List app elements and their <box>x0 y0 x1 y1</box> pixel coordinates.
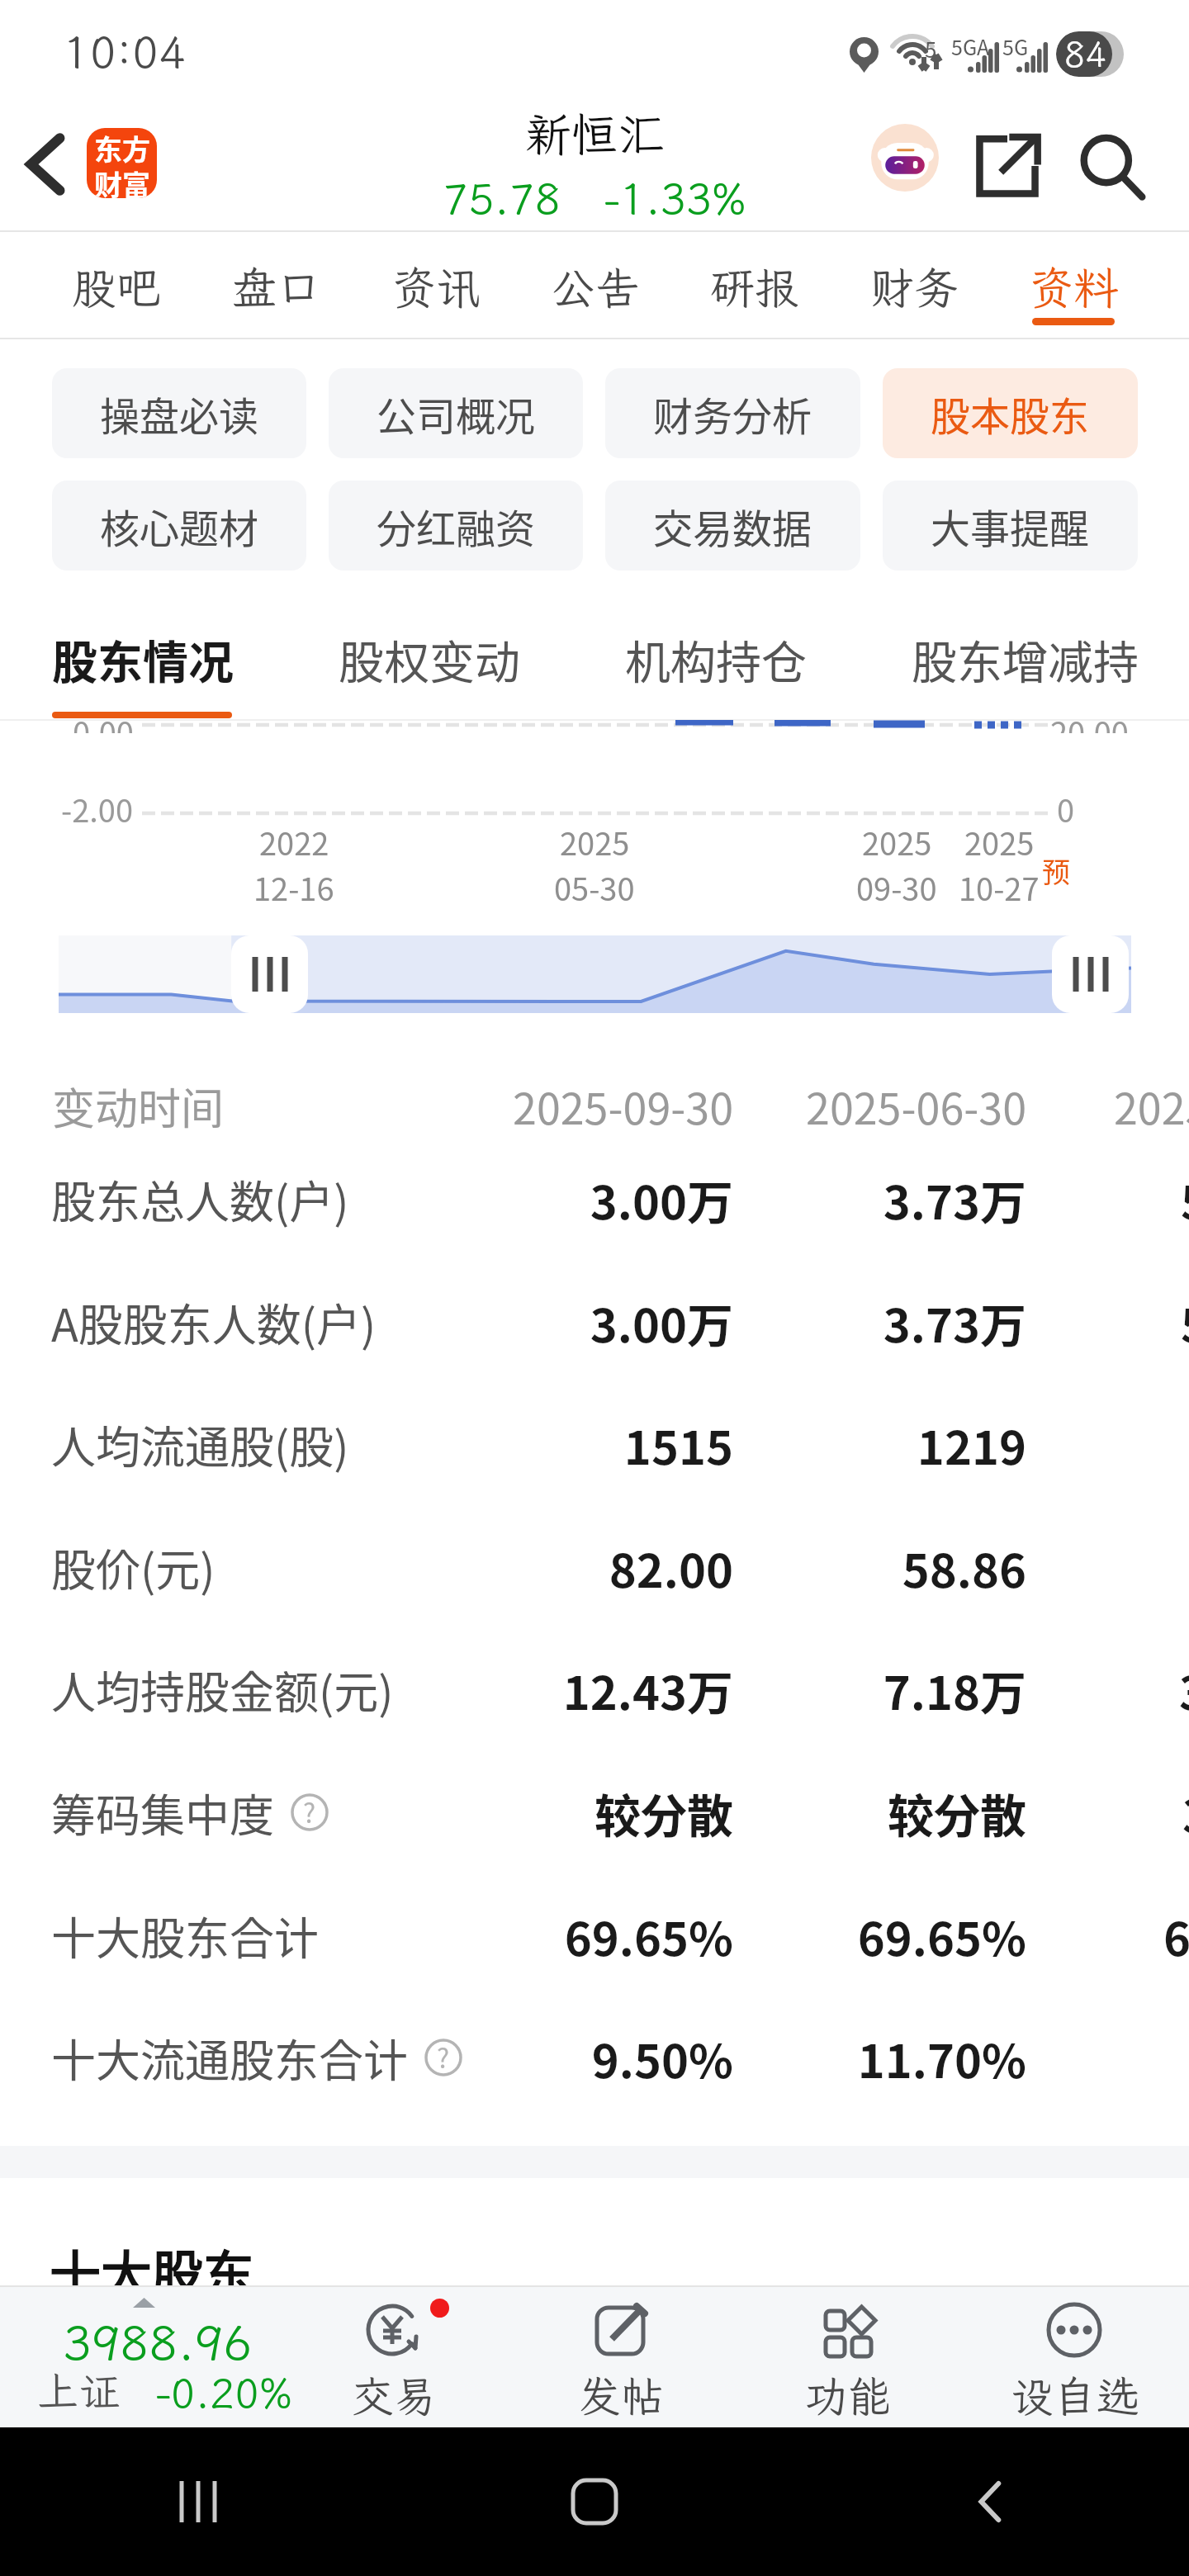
staticText: 5G <box>1002 31 1029 61</box>
staticText: 12-16 <box>253 864 334 910</box>
staticText: 09-30 <box>856 864 937 910</box>
button[interactable]: 股吧 <box>36 232 197 338</box>
button[interactable]: 公告 <box>515 232 675 338</box>
staticText: 10-27 <box>959 864 1040 910</box>
staticText: 11.70% <box>613 2024 1026 2091</box>
button[interactable]: East Money home <box>87 128 157 198</box>
button[interactable]: 设自选 <box>962 2287 1189 2408</box>
staticText: 新恒汇 <box>525 103 664 164</box>
staticText: 股东情况 <box>52 626 234 692</box>
staticText: 核心题材 <box>100 497 259 555</box>
button[interactable]: 公司概况 <box>329 368 583 458</box>
button[interactable]: 资讯 <box>356 232 515 338</box>
button[interactable]: 机构持仓 <box>625 626 808 692</box>
staticText: 3.73万 <box>613 1166 1026 1233</box>
staticText: 2025 <box>862 819 932 864</box>
button[interactable]: 核心题材 <box>52 481 306 571</box>
staticText: 股东总人数(户) <box>51 1167 349 1231</box>
button[interactable]: 股东总人数(户) <box>0 1138 1189 1260</box>
staticText: 0 <box>1057 786 1075 831</box>
button[interactable]: 交易 <box>281 2287 508 2408</box>
button[interactable]: Range handle <box>231 935 308 1013</box>
staticText: 公司概况 <box>377 385 536 443</box>
staticText: 十大股东合计 <box>51 1903 319 1968</box>
button[interactable]: Range handle <box>1052 935 1129 1013</box>
staticText: 05-30 <box>554 864 635 910</box>
button[interactable]: A股股东人数(户) <box>0 1261 1189 1383</box>
button[interactable]: 十大流通股东合计 <box>0 1996 1189 2119</box>
staticText: 75.78 <box>443 169 561 225</box>
button[interactable]: Shanghai index <box>0 2287 281 2350</box>
staticText: 2025-09-30 <box>320 1075 733 1137</box>
button[interactable]: 发帖 <box>508 2287 735 2408</box>
staticText: 变动时间 <box>52 1075 225 1137</box>
button[interactable]: 股价(元) <box>0 1506 1189 1628</box>
staticText: 研报 <box>710 258 799 316</box>
staticText: 股价(元) <box>51 1535 216 1599</box>
button[interactable]: 功能 <box>735 2287 962 2408</box>
staticText: 2025 <box>560 819 630 864</box>
staticText: 3.00万 <box>320 1289 733 1356</box>
button[interactable]: Share <box>970 129 1045 203</box>
staticText: 82.00 <box>320 1534 733 1601</box>
staticText: 大事提醒 <box>931 497 1090 555</box>
staticText: 预 <box>1042 850 1070 891</box>
staticText: 2022 <box>259 819 329 864</box>
button[interactable]: 财务 <box>834 232 993 338</box>
staticText: 2025 <box>1114 1075 1189 1137</box>
staticText: 58.86 <box>613 1534 1026 1601</box>
staticText: 交易 <box>351 2367 438 2423</box>
staticText: 3988.96 <box>63 2310 253 2373</box>
button[interactable]: 盘口 <box>197 232 356 338</box>
button[interactable]: 股东增减持 <box>912 626 1139 692</box>
button[interactable]: 交易数据 <box>605 481 860 571</box>
staticText: 1515 <box>320 1411 733 1478</box>
button[interactable]: 财务分析 <box>605 368 860 458</box>
staticText: 资料 <box>1029 258 1118 316</box>
button[interactable]: AI assistant <box>871 124 939 192</box>
staticText: 3 <box>1182 1779 1189 1846</box>
staticText: 3.73万 <box>613 1289 1026 1356</box>
staticText: 9.50% <box>320 2024 733 2091</box>
button[interactable]: 人均持股金额(元) <box>0 1628 1189 1750</box>
staticText: 人均流通股(股) <box>51 1412 349 1476</box>
staticText: 十大股东 <box>50 2234 255 2308</box>
button[interactable]: 大事提醒 <box>883 481 1138 571</box>
staticText: 69.65% <box>613 1902 1026 1969</box>
staticText: 10:04 <box>63 21 186 80</box>
staticText: 较分散 <box>320 1779 733 1846</box>
button[interactable]: 股东情况 <box>52 626 234 692</box>
staticText: 机构持仓 <box>625 626 808 692</box>
button[interactable]: 操盘必读 <box>52 368 306 458</box>
staticText: 3.00万 <box>320 1166 733 1233</box>
button[interactable]: 筹码集中度 <box>0 1751 1189 1873</box>
button[interactable]: 分红融资 <box>329 481 583 571</box>
button[interactable]: 研报 <box>675 232 834 338</box>
staticText: 20.00 <box>1050 720 1129 733</box>
staticText: 69.65% <box>320 1902 733 1969</box>
button[interactable]: 十大股东合计 <box>0 1874 1189 1996</box>
staticText: 6 <box>1163 1902 1189 1969</box>
button[interactable]: 股本股东 <box>883 368 1138 458</box>
staticText: 公告 <box>551 258 640 316</box>
staticText: ? <box>437 2038 450 2076</box>
button[interactable]: Back <box>2 121 89 208</box>
staticText: 财富 <box>94 163 150 198</box>
button[interactable]: 人均流通股(股) <box>0 1383 1189 1505</box>
button[interactable]: Search <box>1073 129 1153 208</box>
staticText: 1219 <box>613 1411 1026 1478</box>
staticText: 5 <box>1181 1166 1189 1233</box>
staticText: 财务 <box>869 258 959 316</box>
staticText: -2.00 <box>61 786 134 831</box>
staticText: 2025-06-30 <box>613 1075 1026 1137</box>
staticText: 0.00 <box>73 720 134 733</box>
staticText: 操盘必读 <box>100 385 259 443</box>
staticText: 股东增减持 <box>912 626 1139 692</box>
button[interactable]: 资料 <box>993 232 1153 338</box>
staticText: ? <box>303 1792 316 1830</box>
staticText: 人均持股金额(元) <box>51 1657 394 1721</box>
staticText: 发帖 <box>578 2367 665 2423</box>
staticText: 盘口 <box>232 258 321 316</box>
staticText: 筹码集中度 <box>51 1780 274 1844</box>
button[interactable]: 股权变动 <box>339 626 521 692</box>
